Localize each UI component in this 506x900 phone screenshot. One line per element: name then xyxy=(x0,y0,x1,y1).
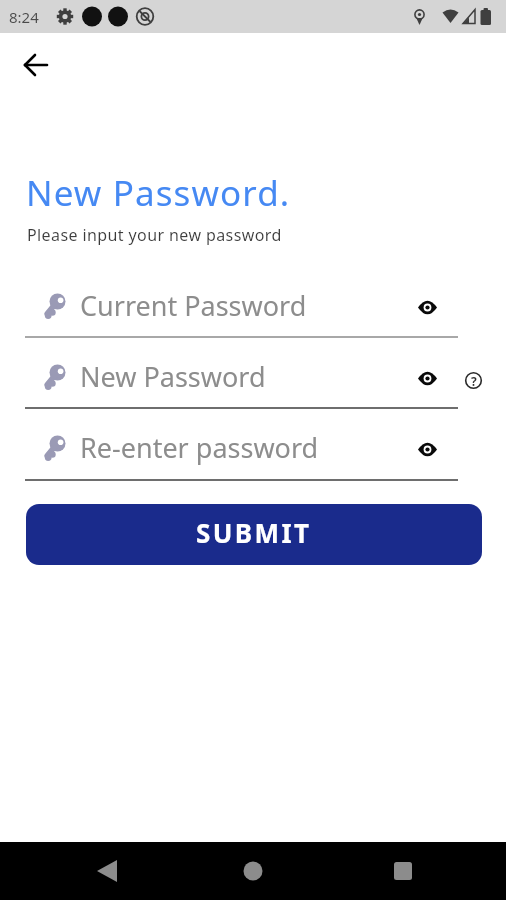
button[interactable] xyxy=(25,288,458,328)
button[interactable] xyxy=(414,368,440,388)
button[interactable] xyxy=(17,46,55,84)
button[interactable]: ? xyxy=(464,371,483,390)
staticText: Please input your new password xyxy=(27,224,282,246)
button[interactable] xyxy=(25,430,458,470)
staticText: New Password. xyxy=(26,169,291,217)
staticText: ? xyxy=(471,373,477,389)
staticText: Re-enter password xyxy=(80,429,319,466)
staticText: SUBMIT xyxy=(196,515,312,550)
button[interactable] xyxy=(25,359,458,399)
button[interactable] xyxy=(414,439,440,459)
staticText: 8:24 xyxy=(9,7,39,27)
staticText: New Password xyxy=(80,358,266,395)
button[interactable]: SUBMIT xyxy=(26,504,482,565)
button[interactable] xyxy=(88,852,126,890)
button[interactable] xyxy=(414,297,440,317)
staticText: Current Password xyxy=(80,287,307,324)
button[interactable] xyxy=(234,852,272,890)
button[interactable] xyxy=(384,852,422,890)
